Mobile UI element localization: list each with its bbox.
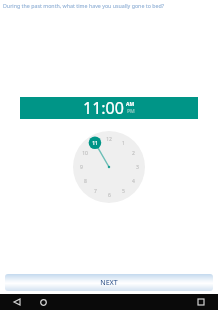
button[interactable]: 1	[73, 131, 145, 203]
button[interactable]: Recent apps	[194, 295, 208, 309]
staticText: 7	[94, 188, 97, 195]
staticText: 2	[132, 150, 135, 157]
button[interactable]: Back	[10, 295, 24, 309]
button[interactable]: AM	[126, 101, 135, 108]
staticText: 11	[92, 140, 98, 147]
button[interactable]: NEXT	[5, 274, 213, 291]
staticText: 5	[122, 188, 125, 195]
staticText: 10	[82, 150, 88, 157]
staticText: 1	[122, 140, 125, 147]
staticText: 8	[84, 178, 87, 185]
staticText: PM	[127, 108, 135, 115]
staticText: 3	[136, 164, 139, 171]
staticText: NEXT	[100, 278, 118, 288]
button[interactable]: PM	[127, 108, 135, 115]
staticText: 6	[108, 192, 111, 199]
staticText: 9	[80, 164, 83, 171]
staticText: 4	[132, 178, 135, 185]
button[interactable]: 11:00	[20, 97, 198, 119]
staticText: AM	[126, 101, 135, 108]
button[interactable]: Home	[36, 295, 50, 309]
staticText: 11:00	[83, 97, 124, 119]
staticText: During the past month, what time have yo…	[3, 2, 165, 9]
staticText: 12	[106, 136, 112, 143]
